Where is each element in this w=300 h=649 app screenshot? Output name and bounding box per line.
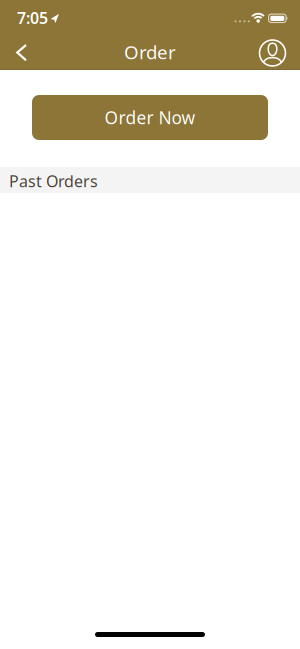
staticText: 7:05 bbox=[17, 7, 48, 28]
staticText: Order Now bbox=[104, 106, 195, 129]
button[interactable]: Back bbox=[8, 39, 34, 65]
staticText: Past Orders bbox=[9, 170, 98, 192]
button[interactable]: Order Now bbox=[32, 95, 268, 140]
button[interactable]: Profile bbox=[258, 39, 286, 67]
staticText: Order bbox=[124, 40, 176, 64]
